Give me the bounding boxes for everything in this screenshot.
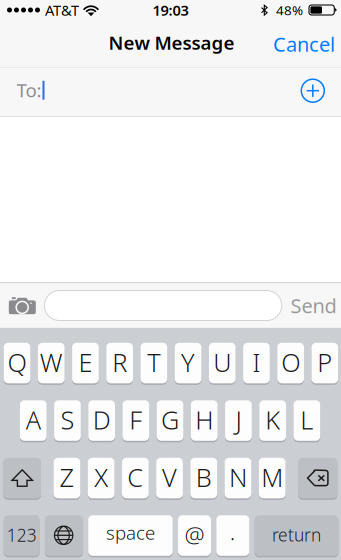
staticText: To: xyxy=(16,78,41,102)
staticText: C xyxy=(127,460,143,494)
button[interactable]: V xyxy=(156,458,183,500)
staticText: Y xyxy=(181,345,195,379)
button[interactable]: space xyxy=(88,515,173,558)
staticText: F xyxy=(129,403,142,436)
staticText: A xyxy=(26,403,41,436)
staticText: W xyxy=(40,345,63,379)
staticText: N xyxy=(229,460,247,494)
button[interactable]: R xyxy=(106,343,133,385)
button[interactable]: Send xyxy=(285,290,341,320)
staticText: space xyxy=(106,520,155,545)
staticText: 19:03 xyxy=(152,0,188,20)
staticText: B xyxy=(196,460,212,494)
button[interactable]: N xyxy=(225,458,251,500)
staticText: New Message xyxy=(108,30,234,55)
button[interactable]: Q xyxy=(4,343,30,385)
button[interactable]: G xyxy=(157,400,183,443)
button[interactable]: P xyxy=(311,343,338,385)
button[interactable]: F xyxy=(122,400,149,443)
staticText: E xyxy=(78,345,92,379)
staticText: . xyxy=(230,516,236,547)
button[interactable]: A xyxy=(20,400,47,443)
button[interactable]: T xyxy=(140,343,167,385)
staticText: 123 xyxy=(7,523,37,546)
button[interactable]: Delete xyxy=(298,458,337,500)
staticText: Q xyxy=(7,345,26,379)
button[interactable]: X xyxy=(88,458,114,500)
button[interactable]: Next keyboard xyxy=(45,515,83,558)
button[interactable]: C xyxy=(122,458,149,500)
button[interactable]: K xyxy=(259,400,286,443)
button[interactable]: return xyxy=(255,515,338,558)
staticText: 48% xyxy=(276,1,303,19)
button[interactable]: M xyxy=(259,458,285,500)
staticText: Cancel xyxy=(273,31,335,57)
staticText: S xyxy=(60,403,74,436)
button[interactable]: Z xyxy=(54,458,80,500)
staticText: J xyxy=(235,403,241,436)
button[interactable]: 123 xyxy=(4,515,40,558)
staticText: G xyxy=(161,403,179,436)
button[interactable]: O xyxy=(277,343,304,385)
button[interactable]: E xyxy=(72,343,99,385)
staticText: @ xyxy=(184,519,204,550)
button[interactable]: D xyxy=(88,400,115,443)
staticText: L xyxy=(300,403,313,436)
button[interactable]: U xyxy=(209,343,236,385)
staticText: Z xyxy=(59,460,74,494)
button[interactable]: B xyxy=(190,458,217,500)
button[interactable]: Take photo xyxy=(9,297,36,317)
button[interactable]: . xyxy=(216,515,249,558)
staticText: T xyxy=(147,345,160,379)
staticText: V xyxy=(162,460,177,494)
button[interactable]: Shift xyxy=(3,458,41,500)
staticText: O xyxy=(281,345,300,379)
button[interactable]: Add contact xyxy=(301,79,324,102)
staticText: U xyxy=(213,345,231,379)
button[interactable]: I xyxy=(243,343,270,385)
staticText: K xyxy=(265,403,280,436)
staticText: X xyxy=(94,460,108,494)
button[interactable]: S xyxy=(54,400,81,443)
staticText: H xyxy=(195,403,213,436)
button[interactable]: @ xyxy=(178,515,211,558)
staticText: R xyxy=(112,345,127,379)
staticText: M xyxy=(261,460,283,494)
button[interactable]: Cancel xyxy=(268,27,340,61)
staticText: P xyxy=(317,345,332,379)
staticText: Send xyxy=(290,292,336,319)
button[interactable]: H xyxy=(191,400,218,443)
button[interactable]: L xyxy=(293,400,320,443)
button[interactable]: W xyxy=(38,343,65,385)
staticText: AT&T xyxy=(45,0,79,20)
staticText: return xyxy=(272,523,321,546)
button[interactable]: J xyxy=(225,400,252,443)
staticText: I xyxy=(252,345,260,379)
button[interactable]: Y xyxy=(175,343,201,385)
staticText: D xyxy=(93,403,111,436)
